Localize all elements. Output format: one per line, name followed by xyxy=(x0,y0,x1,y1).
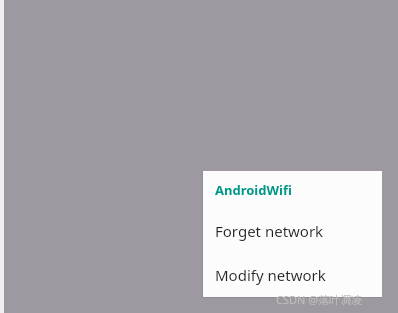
button[interactable]: Back xyxy=(0,8,50,57)
staticText: Forget network xyxy=(215,221,324,241)
staticText: Searching for Wi-Fi networks xyxy=(68,227,243,245)
button[interactable]: Add network xyxy=(0,162,398,214)
staticText: AndroidWifi xyxy=(215,181,292,199)
button[interactable]: Modify network xyxy=(203,253,382,297)
button[interactable]: On xyxy=(0,57,398,101)
button[interactable]: Forget network xyxy=(203,209,382,253)
staticText: CSDN @落叶凋凌 xyxy=(276,292,363,307)
button[interactable]: AndroidWifi xyxy=(0,105,398,161)
button[interactable]: AndroidWifi xyxy=(203,171,382,209)
staticText: Modify network xyxy=(215,265,326,285)
